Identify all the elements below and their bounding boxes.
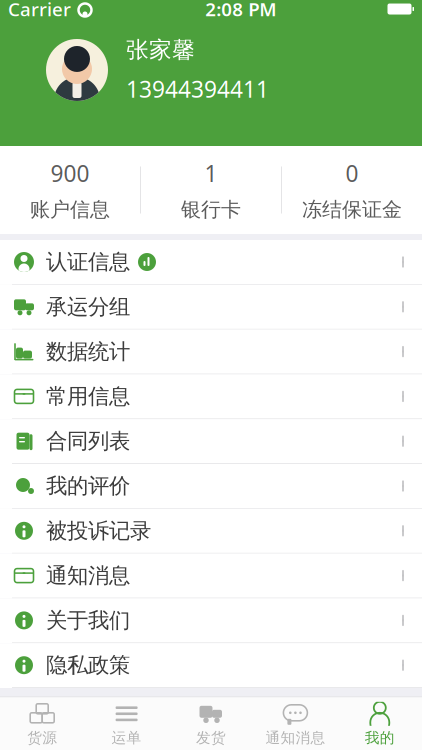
button[interactable]: 通知消息 — [253, 697, 338, 750]
staticText: 张家馨 — [126, 36, 195, 64]
staticText: 被投诉记录 — [46, 518, 151, 544]
staticText: 数据统计 — [46, 338, 130, 365]
staticText: 冻结保证金 — [302, 197, 402, 222]
button[interactable]: 0 — [282, 146, 422, 234]
staticText: 隐私政策 — [46, 652, 130, 678]
staticText: 通知消息 — [265, 729, 325, 747]
button[interactable]: 常用信息 — [0, 374, 422, 419]
button[interactable]: 数据统计 — [0, 330, 422, 374]
staticText: 0 — [345, 158, 358, 188]
staticText: 账户信息 — [30, 197, 110, 222]
staticText: 货源 — [27, 729, 57, 747]
staticText: 发货 — [196, 729, 226, 747]
button[interactable]: 发货 — [169, 697, 253, 750]
button[interactable]: 被投诉记录 — [0, 509, 422, 554]
staticText: 常用信息 — [46, 383, 130, 409]
staticText: Carrier — [8, 0, 71, 21]
staticText: 关于我们 — [46, 607, 130, 633]
button[interactable]: 合同列表 — [0, 419, 422, 464]
button[interactable]: 我的 — [338, 697, 422, 750]
staticText: 合同列表 — [46, 428, 130, 454]
button[interactable]: 900 — [0, 146, 140, 234]
button[interactable]: 通知消息 — [0, 554, 422, 598]
staticText: 银行卡 — [181, 197, 241, 222]
staticText: 1 — [204, 158, 217, 188]
button[interactable]: 我的评价 — [0, 464, 422, 509]
staticText: 我的 — [365, 729, 395, 747]
staticText: 13944394411 — [126, 74, 269, 104]
button[interactable]: 货源 — [0, 697, 84, 750]
staticText: 2:08 PM — [205, 0, 276, 21]
button[interactable]: 1 — [141, 146, 281, 234]
button[interactable]: 认证信息 — [0, 240, 422, 285]
staticText: 承运分组 — [46, 294, 130, 320]
button[interactable]: 隐私政策 — [0, 643, 422, 688]
staticText: 我的评价 — [46, 473, 130, 499]
staticText: 运单 — [112, 729, 142, 747]
staticText: 通知消息 — [46, 562, 130, 589]
button[interactable]: 关于我们 — [0, 598, 422, 643]
staticText: 900 — [50, 158, 89, 188]
button[interactable]: 运单 — [84, 697, 169, 750]
staticText: 认证信息 — [46, 249, 130, 275]
button[interactable]: 承运分组 — [0, 285, 422, 330]
